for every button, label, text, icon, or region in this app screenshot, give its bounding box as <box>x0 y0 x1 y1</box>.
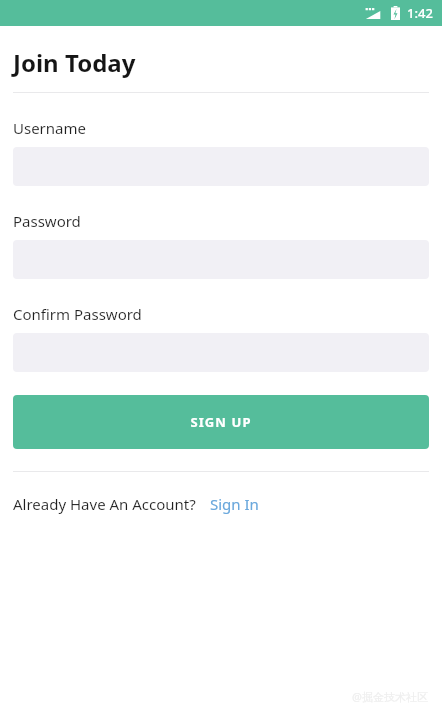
staticText: Sign In <box>210 494 259 514</box>
staticText: @掘金技术社区 <box>352 689 428 704</box>
staticText: Join Today <box>13 46 136 79</box>
staticText: SIGN UP <box>190 413 252 431</box>
button[interactable]: Sign In <box>210 494 259 514</box>
staticText: Already Have An Account? <box>13 494 196 514</box>
staticText: Username <box>13 118 86 138</box>
staticText: 1:42 <box>407 4 433 22</box>
staticText: Confirm Password <box>13 304 142 324</box>
staticText: Password <box>13 211 81 231</box>
button[interactable]: SIGN UP <box>13 395 429 449</box>
